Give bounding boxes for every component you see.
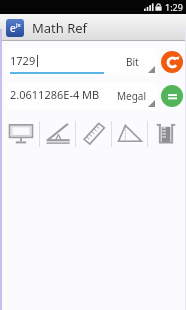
staticText: 2.0611286E-4 MB — [10, 87, 100, 102]
button[interactable]: 2.0611286E-4 MB — [5, 82, 157, 110]
staticText: 1:29 — [165, 1, 183, 13]
staticText: 1729 — [10, 53, 36, 68]
button[interactable]: Reset — [161, 51, 183, 73]
staticText: Bit — [126, 55, 139, 69]
button[interactable]: Beaker — [148, 115, 183, 153]
button[interactable]: Bit — [107, 48, 157, 76]
staticText: e — [10, 21, 16, 35]
button[interactable]: e — [0, 14, 186, 41]
button[interactable]: Angle — [40, 115, 75, 153]
button[interactable]: Convert — [161, 85, 183, 107]
staticText: jx — [16, 21, 21, 29]
staticText: Math Ref — [32, 19, 88, 37]
button[interactable]: Ruler — [76, 115, 111, 153]
button[interactable]: 1729 — [5, 48, 157, 76]
button[interactable]: Triangle — [112, 115, 147, 153]
staticText: Megal — [117, 89, 147, 103]
button[interactable]: Megal — [107, 82, 157, 110]
button[interactable]: Screen — [3, 115, 39, 153]
